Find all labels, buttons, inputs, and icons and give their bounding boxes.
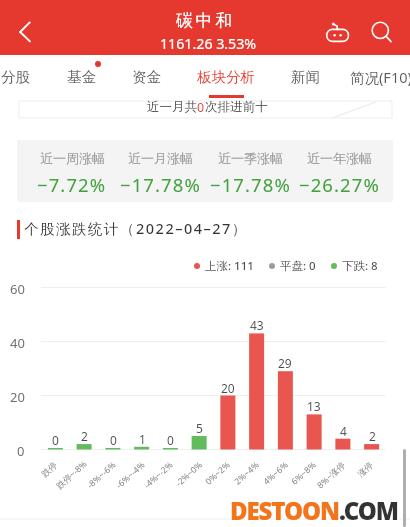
staticText: DESTOON [232,496,341,527]
staticText: 0 [110,432,117,448]
staticText: 涨停 [356,459,376,480]
button[interactable] [17,140,393,202]
staticText: 0 [167,432,174,448]
staticText: 近一季涨幅 [218,150,283,166]
staticText: .COM [339,494,398,527]
staticText: 资金 [132,68,161,86]
staticText: -4%~-2% [141,459,175,491]
staticText: 2%~4% [232,458,262,487]
staticText: 2 [81,428,88,444]
staticText: −17.78% [210,172,291,197]
staticText: 1 [139,431,146,447]
staticText: -2%~0% [173,459,205,489]
staticText: -6%~-4% [113,459,147,491]
staticText: 平盘: 0 [280,258,316,274]
staticText: −26.27% [299,172,380,197]
staticText: 新闻 [291,68,320,86]
staticText: 29 [278,355,292,371]
staticText: 5 [196,420,203,436]
staticText: 分股 [1,68,30,86]
staticText: DESTOON [230,494,339,527]
staticText: 近一年涨幅 [307,150,372,166]
button[interactable]: 上涨: 111 [194,258,254,274]
staticText: 2 [369,428,376,444]
staticText: 基金 [67,68,96,86]
staticText: 次排进前十 [205,99,268,115]
staticText: −7.72% [37,172,107,197]
staticText: 上涨: 111 [205,258,254,274]
staticText: 13 [307,398,321,414]
staticText: −17.78% [120,172,201,197]
button[interactable]: 分股 [0,58,49,96]
staticText: 4 [340,423,347,439]
button[interactable]: Search [362,6,402,50]
staticText: 个股涨跌统计（2022–04–27） [24,218,248,238]
staticText: 20 [10,388,25,406]
staticText: .COM [341,496,400,527]
button[interactable]: 下跌: 8 [331,258,378,274]
staticText: 0 [17,442,25,460]
staticText: 20 [221,380,235,396]
button[interactable]: 资金 [112,58,180,96]
button[interactable]: 板块分析 [192,58,260,96]
staticText: 简况(F10) [350,67,410,87]
staticText: -8%~-6% [84,459,118,491]
button[interactable]: 简况(F10) [347,58,410,96]
staticText: 8%~涨停 [314,459,348,491]
staticText: 4%~6% [261,458,291,487]
staticText: 0 [52,432,59,448]
button[interactable]: 新闻 [271,58,339,96]
staticText: 下跌: 8 [342,258,378,274]
button[interactable]: Back [0,0,46,55]
staticText: 40 [10,334,25,352]
staticText: 跌停 [40,459,60,480]
staticText: 1161.26 3.53% [160,34,257,53]
staticText: 43 [250,317,264,333]
staticText: 跌停~-8% [54,458,89,492]
staticText: 0 [197,99,205,116]
staticText: 近一月涨幅 [128,150,193,166]
button[interactable]: 基金 [47,58,115,96]
staticText: 板块分析 [197,68,255,86]
button[interactable]: 平盘: 0 [269,258,316,274]
staticText: 60 [10,280,25,298]
staticText: 6%~8% [289,458,319,487]
staticText: 碳中和 [176,10,235,31]
button[interactable]: AI assistant [316,6,360,50]
staticText: 近一月共 [147,99,197,115]
staticText: 0%~2% [203,458,233,487]
staticText: 近一周涨幅 [40,150,105,166]
